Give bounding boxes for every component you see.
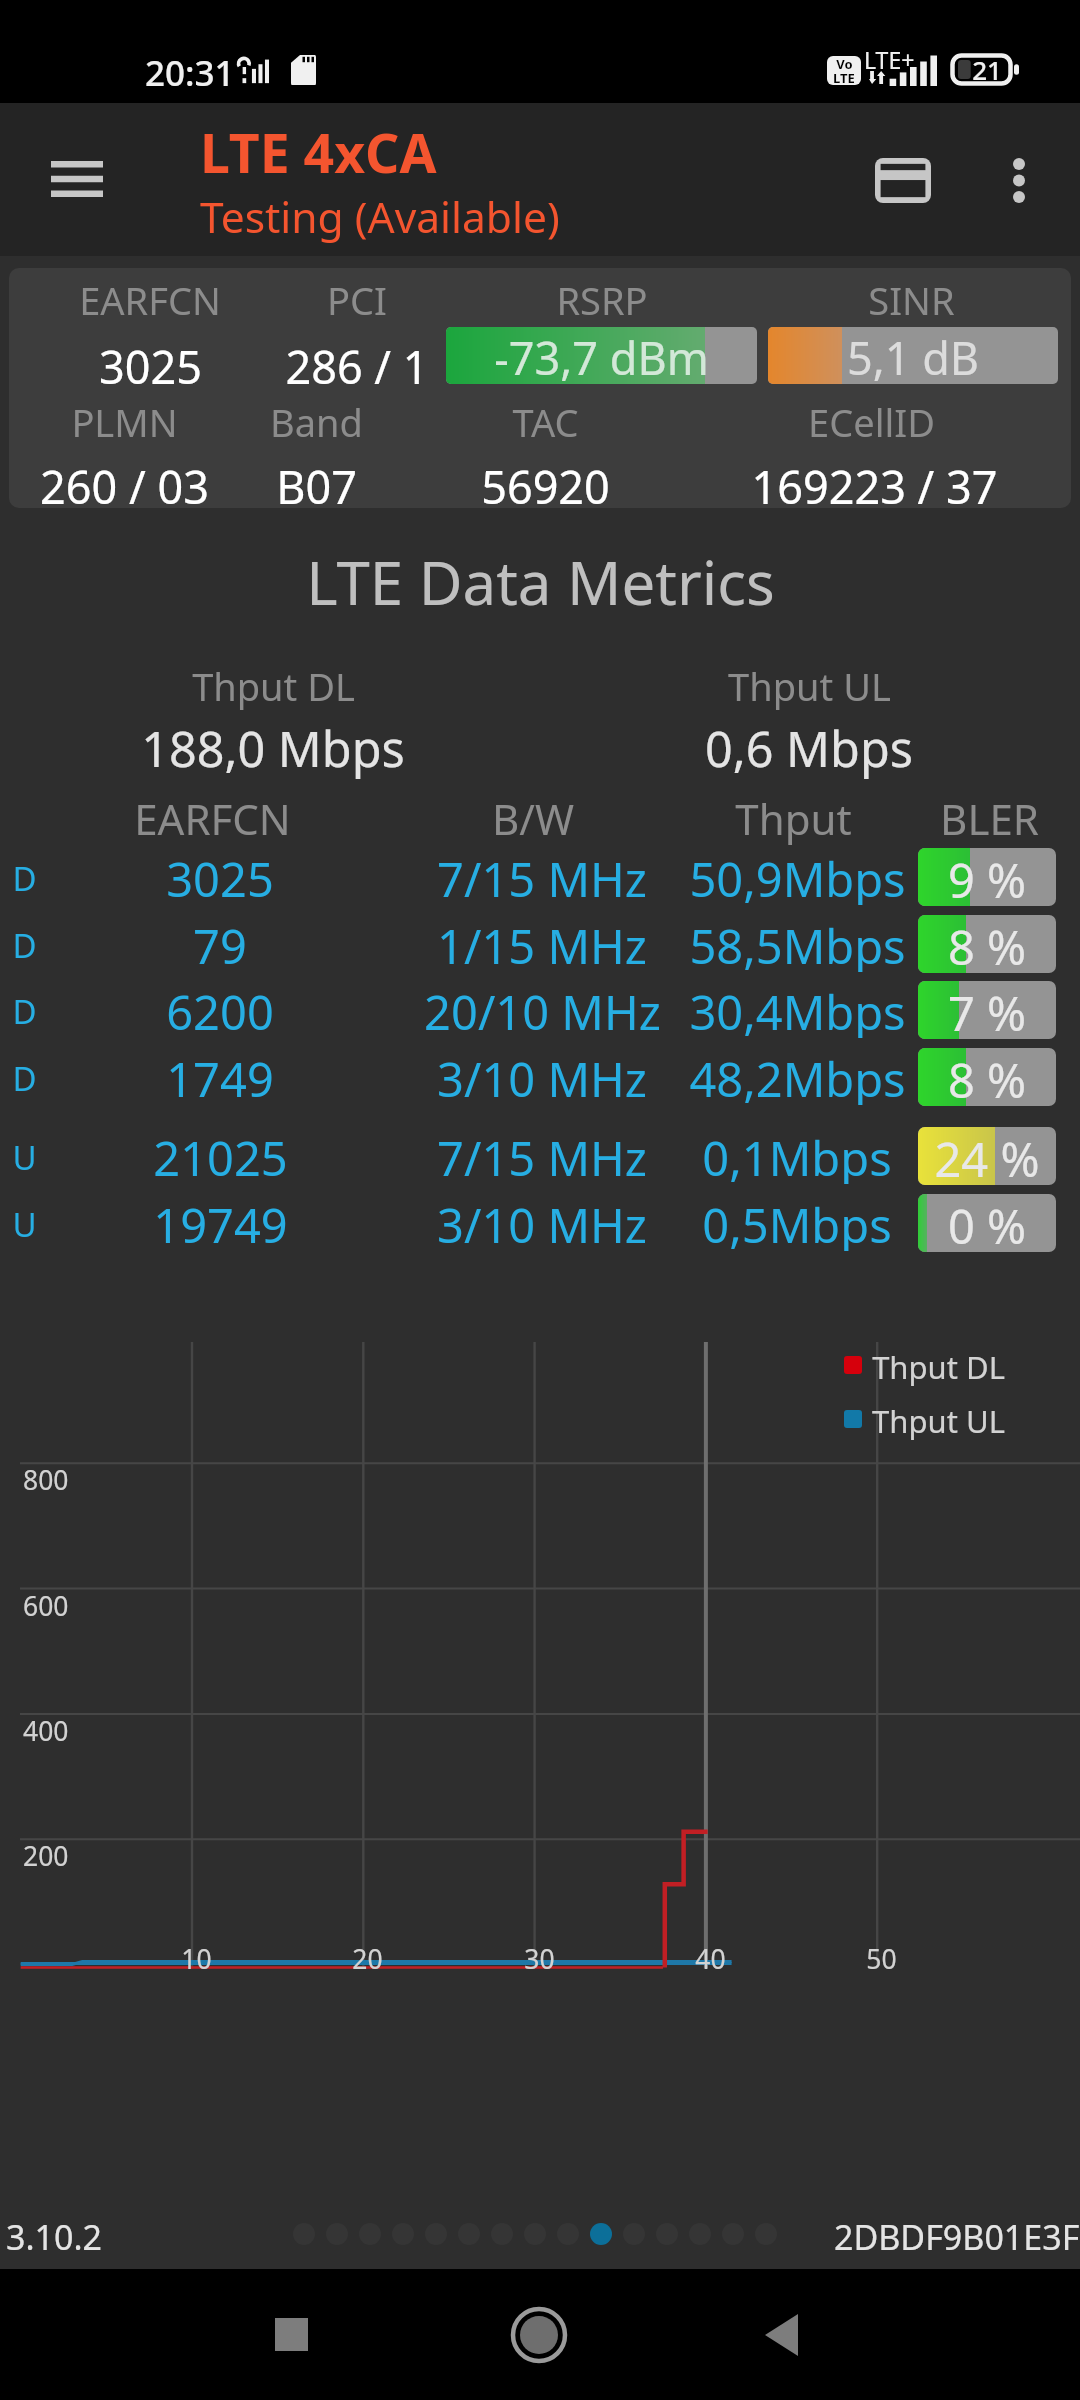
staticText: U [12,1135,37,1180]
button[interactable]: D [0,915,1080,973]
button[interactable]: Back [690,2269,872,2400]
staticText: 400 [23,1713,69,1749]
staticText: 5,1 dB [768,327,1058,384]
staticText: 7 % [918,981,1056,1039]
staticText: 48,2Mbps [689,1047,906,1105]
staticText: 30,4Mbps [689,980,906,1038]
staticText: PLMN [71,396,178,448]
staticText: 20:31 [145,49,235,97]
staticText: 260 / 03 [40,456,209,517]
staticText: 8 % [918,915,1056,973]
staticText: BLER [940,790,1039,847]
staticText: 3/10 MHz [437,1193,647,1251]
staticText: 169223 / 37 [751,456,998,517]
staticText: SINR [868,274,955,326]
staticText: Thput UL [728,660,891,712]
button[interactable]: D [0,981,1080,1039]
button[interactable]: More options [956,103,1080,256]
staticText: 40 [695,1941,726,1977]
staticText: EARFCN [79,274,221,326]
staticText: Thput [735,790,852,847]
staticText: D [12,1056,37,1101]
staticText: 0,5Mbps [702,1193,892,1251]
staticText: 0 % [918,1194,1056,1252]
button[interactable]: Layout view [820,103,956,256]
button[interactable]: Recents [200,2269,382,2400]
staticText: EARFCN [134,790,291,847]
staticText: 0,6 Mbps [705,715,913,781]
button[interactable]: Home [448,2269,630,2400]
button[interactable]: U [0,1194,1080,1252]
staticText: TAC [512,396,579,448]
staticText: 24 % [918,1127,1056,1185]
staticText: LTE Data Metrics [306,541,775,623]
button[interactable]: D [0,848,1080,906]
staticText: 20/10 MHz [424,980,661,1038]
staticText: 56920 [481,456,610,517]
staticText: LTE [833,69,855,85]
staticText: 30 [524,1941,555,1977]
staticText: ECellID [808,396,935,448]
staticText: PCI [327,274,387,326]
staticText: 8 % [918,1048,1056,1106]
button[interactable]: Open navigation menu [0,103,154,256]
staticText: 10 [181,1941,212,1977]
staticText: B07 [276,456,357,517]
staticText: U [12,1202,37,1247]
staticText: -73,7 dBm [446,327,757,384]
staticText: 6200 [166,980,274,1038]
staticText: 9 % [918,848,1056,906]
staticText: 50,9Mbps [689,847,906,905]
staticText: 286 / 1 [285,336,429,397]
staticText: 58,5Mbps [689,914,906,972]
staticText: Band [270,396,363,448]
staticText: 3.10.2 [6,2214,103,2260]
button[interactable]: D [0,1048,1080,1106]
staticText: D [12,923,37,968]
staticText: 1/15 MHz [437,914,647,972]
staticText: D [12,989,37,1034]
staticText: 200 [23,1838,69,1874]
staticText: B/W [492,790,574,847]
staticText: 21025 [153,1126,288,1184]
staticText: 2DBDF9B01E3F [834,2214,1080,2260]
staticText: 188,0 Mbps [141,715,405,781]
staticText: 1749 [166,1047,274,1105]
staticText: 7/15 MHz [437,847,647,905]
staticText: 79 [193,914,247,972]
staticText: 3025 [166,847,274,905]
staticText: Vo [836,56,853,73]
staticText: 3025 [99,336,202,397]
staticText: 7/15 MHz [437,1126,647,1184]
staticText: 50 [866,1941,897,1977]
staticText: D [12,856,37,901]
staticText: RSRP [556,274,648,326]
staticText: Thput DL [192,660,355,712]
staticText: Thput UL [872,1400,1005,1442]
staticText: 600 [23,1588,69,1624]
staticText: 0,1Mbps [702,1126,892,1184]
staticText: Thput DL [872,1346,1005,1388]
staticText: 20 [352,1941,383,1977]
staticText: Testing (Available) [200,188,560,246]
staticText: 19749 [153,1193,288,1251]
button[interactable]: U [0,1127,1080,1185]
staticText: 21 [972,52,1002,83]
staticText: LTE+ [864,44,915,75]
staticText: 3/10 MHz [437,1047,647,1105]
staticText: 800 [23,1462,69,1498]
staticText: LTE 4xCA [200,116,437,189]
